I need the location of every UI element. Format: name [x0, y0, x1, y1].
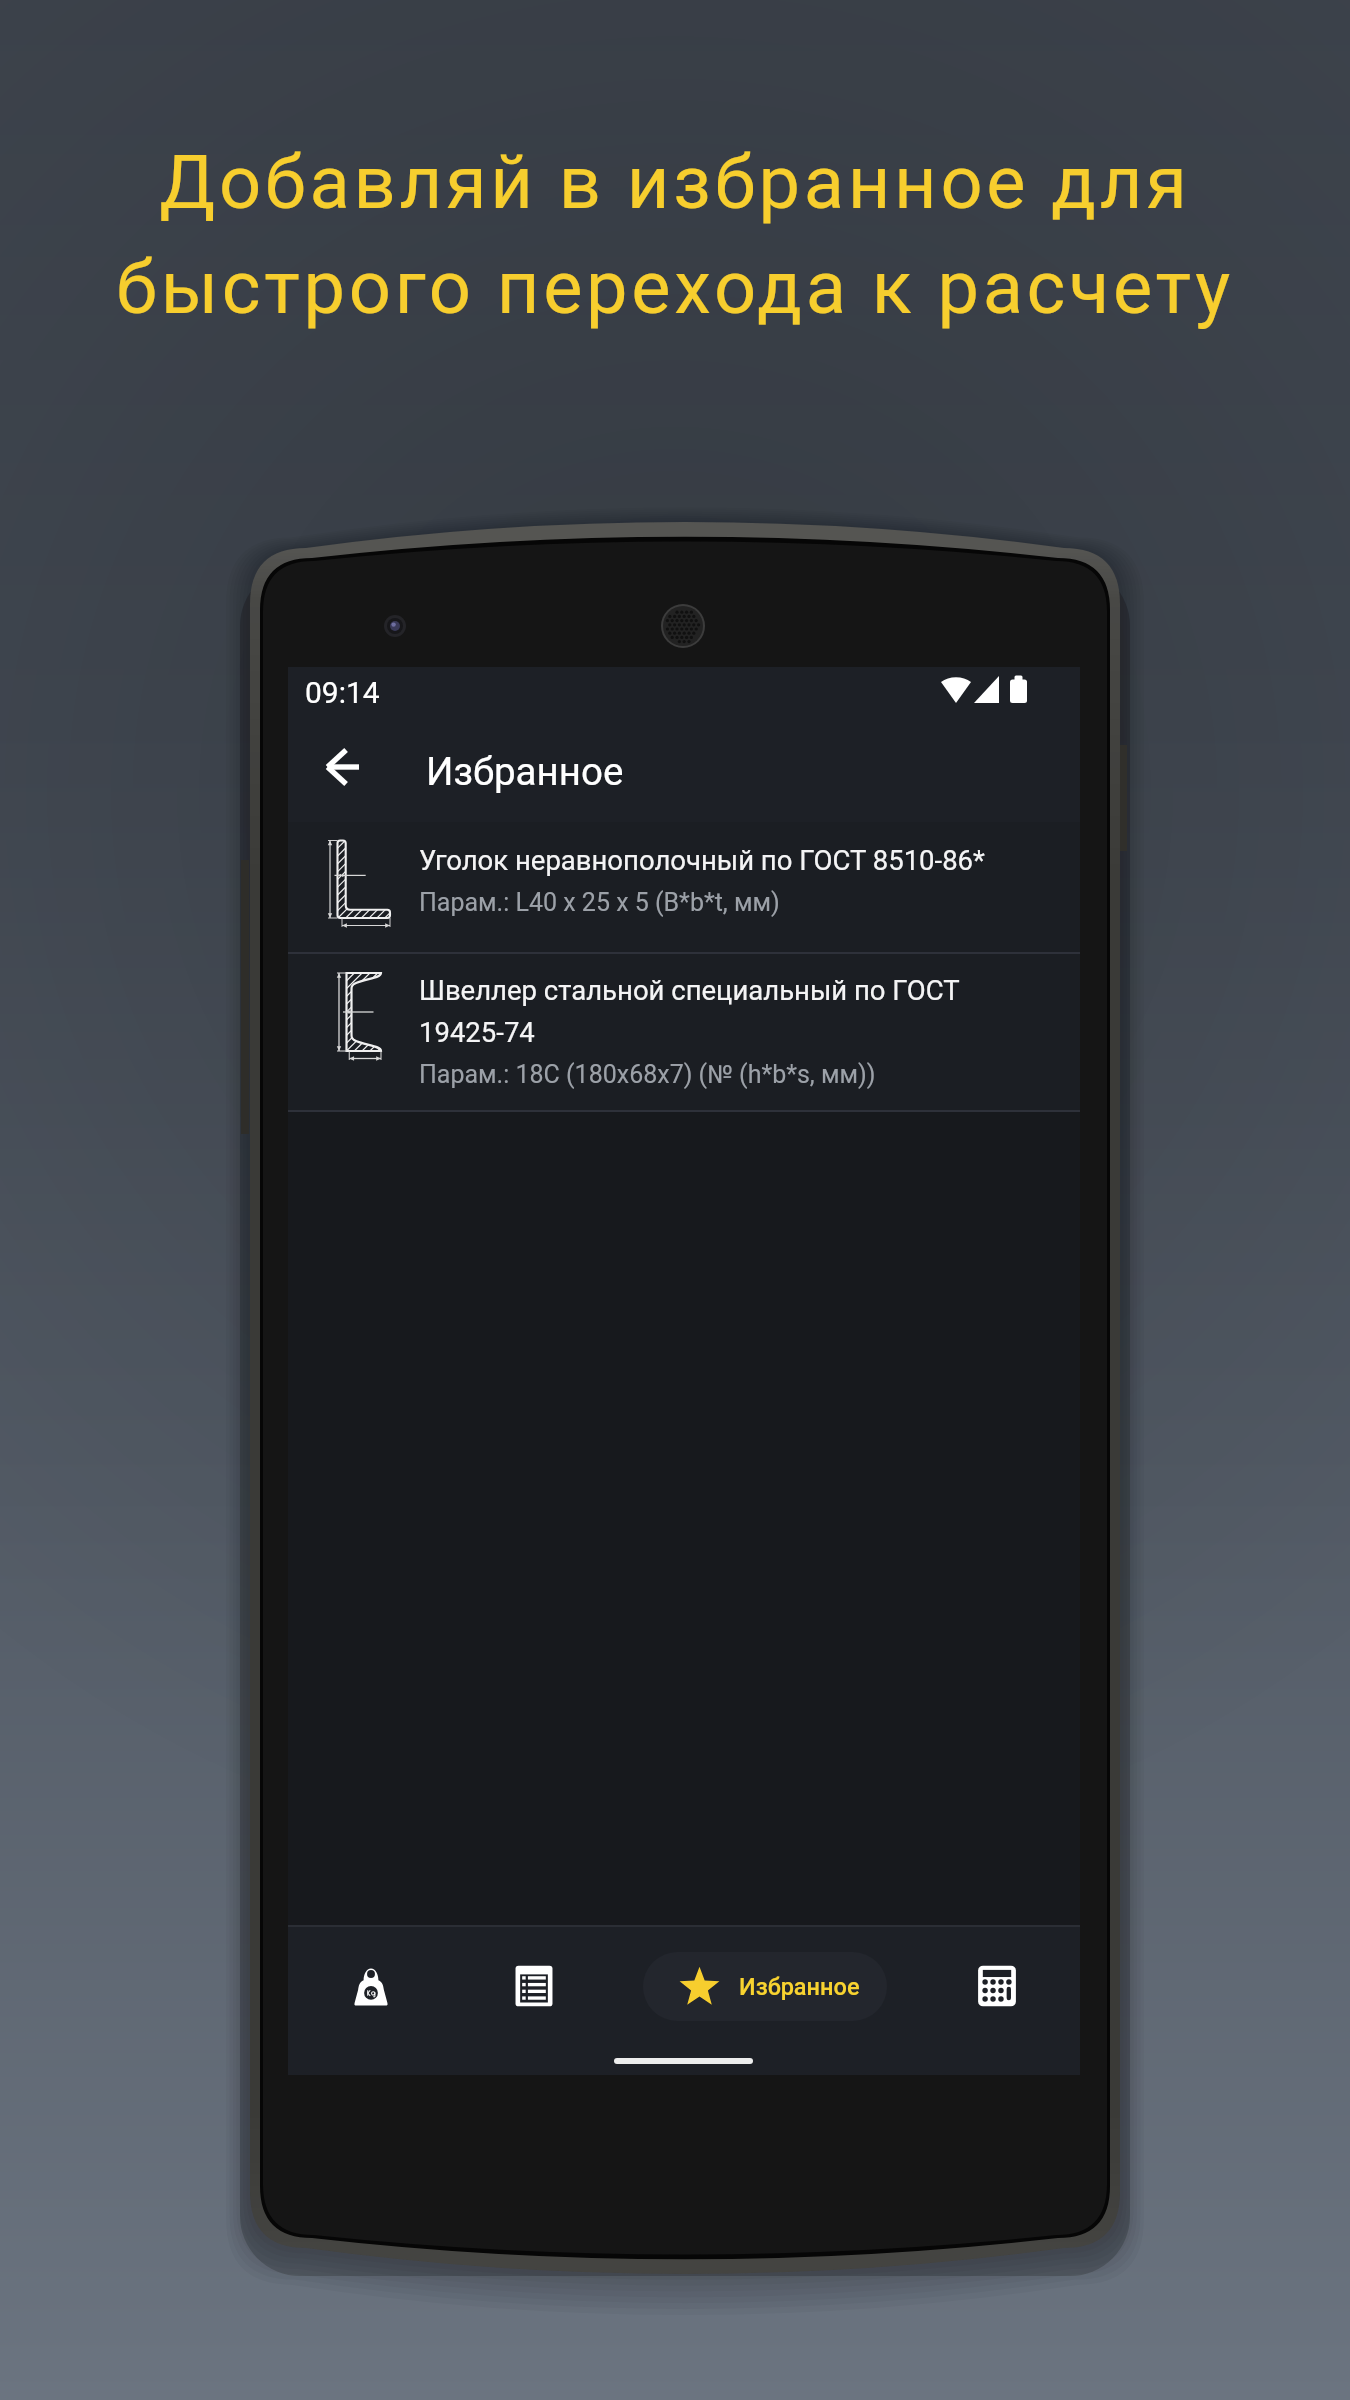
button[interactable]: Калькулятор — [961, 1950, 1033, 2022]
button[interactable]: Сортамент — [498, 1950, 570, 2022]
staticText: Швеллер стальной специальный по ГОСТ 194… — [419, 974, 991, 1048]
button[interactable]: Назад — [312, 737, 372, 797]
staticText: Добавляй в избранное для быстрого перехо… — [116, 139, 1234, 331]
staticText: Избранное — [739, 1973, 860, 2001]
button[interactable]: Швеллер стальной специальный по ГОСТ 194… — [288, 952, 1080, 1110]
staticText: Парам.: L40 x 25 x 5 (B*b*t, мм) — [419, 888, 780, 917]
button[interactable]: Вес — [335, 1950, 407, 2022]
button[interactable]: Избранное — [643, 1952, 887, 2021]
staticText: 09:14 — [305, 675, 380, 710]
staticText: Уголок неравнополочный по ГОСТ 8510-86* — [419, 844, 985, 876]
staticText: Парам.: 18С (180x68x7) (№ (h*b*s, мм)) — [419, 1060, 876, 1089]
staticText: Избранное — [426, 749, 624, 794]
button[interactable]: Уголок неравнополочный по ГОСТ 8510-86* — [288, 822, 1080, 952]
